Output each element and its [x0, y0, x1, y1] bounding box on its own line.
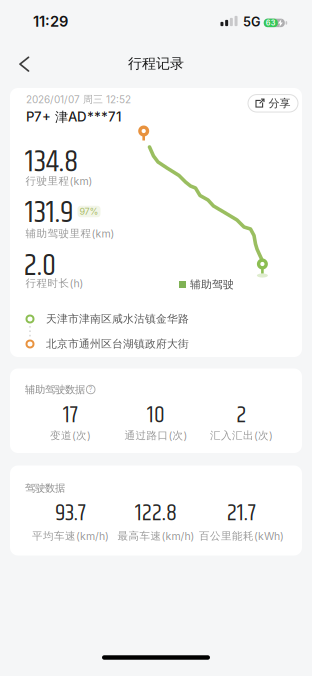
staticText: 122.8 [135, 495, 177, 532]
staticText: 辅助驾驶 [190, 278, 234, 291]
staticText: 行程时长(h) [25, 277, 83, 290]
staticText: 2026/01/07 周三 12:52 [26, 93, 131, 106]
staticText: 2.0 [24, 242, 56, 290]
staticText: 11:29 [33, 12, 68, 30]
button[interactable]: 说明 [85, 384, 96, 395]
staticText: 汇入汇出(次) [210, 429, 273, 442]
staticText: 变道(次) [50, 429, 91, 442]
staticText: 17 [63, 397, 78, 434]
staticText: 分享 [268, 96, 290, 110]
staticText: 北京市通州区台湖镇政府大街 [46, 337, 189, 351]
staticText: 97% [79, 206, 98, 217]
staticText: 10 [147, 397, 165, 434]
staticText: 最高车速(km/h) [117, 529, 194, 543]
staticText: 131.9 [25, 189, 74, 237]
staticText: 5G [243, 14, 260, 30]
staticText: 辅助驾驶数据 [25, 383, 85, 396]
staticText: 21.7 [227, 495, 256, 532]
staticText: 平均车速(km/h) [32, 529, 109, 543]
staticText: 2 [236, 397, 246, 434]
staticText: 百公里能耗(kWh) [199, 529, 284, 543]
button[interactable]: 分享 [247, 94, 298, 112]
button[interactable]: Back [12, 53, 36, 76]
staticText: 63 [266, 18, 276, 27]
staticText: 93.7 [55, 495, 86, 532]
staticText: 行程记录 [128, 55, 184, 72]
staticText: 辅助驾驶里程(km) [25, 227, 114, 240]
staticText: 通过路口(次) [124, 429, 187, 442]
staticText: P7+ 津AD***71 [26, 109, 121, 125]
staticText: 驾驶数据 [25, 481, 65, 494]
staticText: 行驶里程(km) [25, 174, 92, 188]
staticText: 天津市津南区咸水沽镇金华路 [46, 312, 189, 326]
staticText: ? [89, 385, 93, 394]
staticText: 134.8 [25, 138, 78, 186]
